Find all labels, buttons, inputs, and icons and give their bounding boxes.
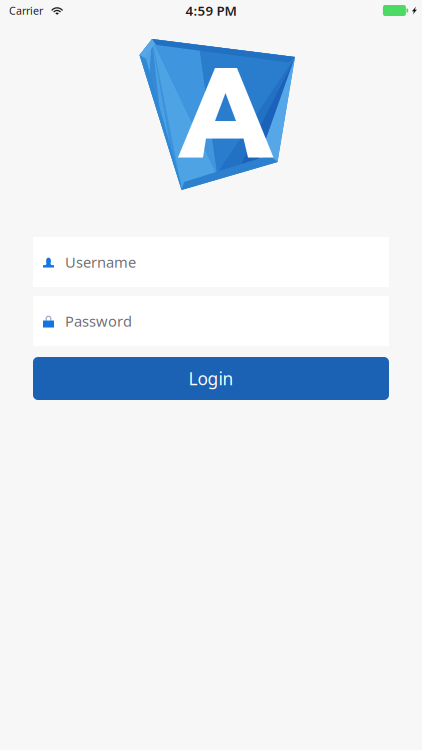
button[interactable]: Username [33, 237, 389, 287]
staticText: Carrier [9, 3, 43, 18]
staticText: Login [188, 367, 233, 390]
staticText: Password [65, 311, 132, 331]
staticText: 4:59 PM [185, 2, 236, 19]
staticText: Username [65, 252, 136, 272]
button[interactable]: Password [33, 296, 389, 346]
button[interactable]: Login [33, 357, 389, 400]
